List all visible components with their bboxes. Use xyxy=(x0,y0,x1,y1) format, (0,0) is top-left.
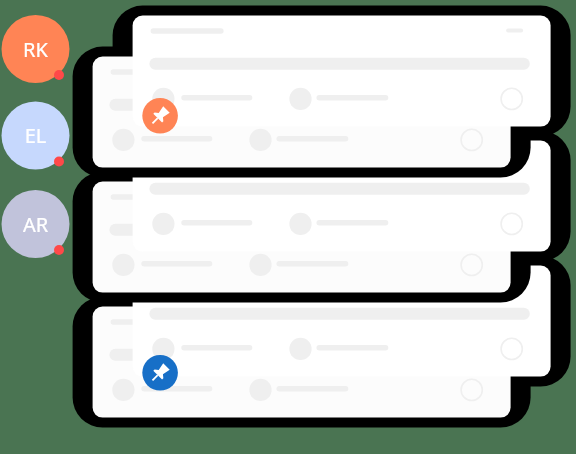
button[interactable] xyxy=(0,0,576,454)
